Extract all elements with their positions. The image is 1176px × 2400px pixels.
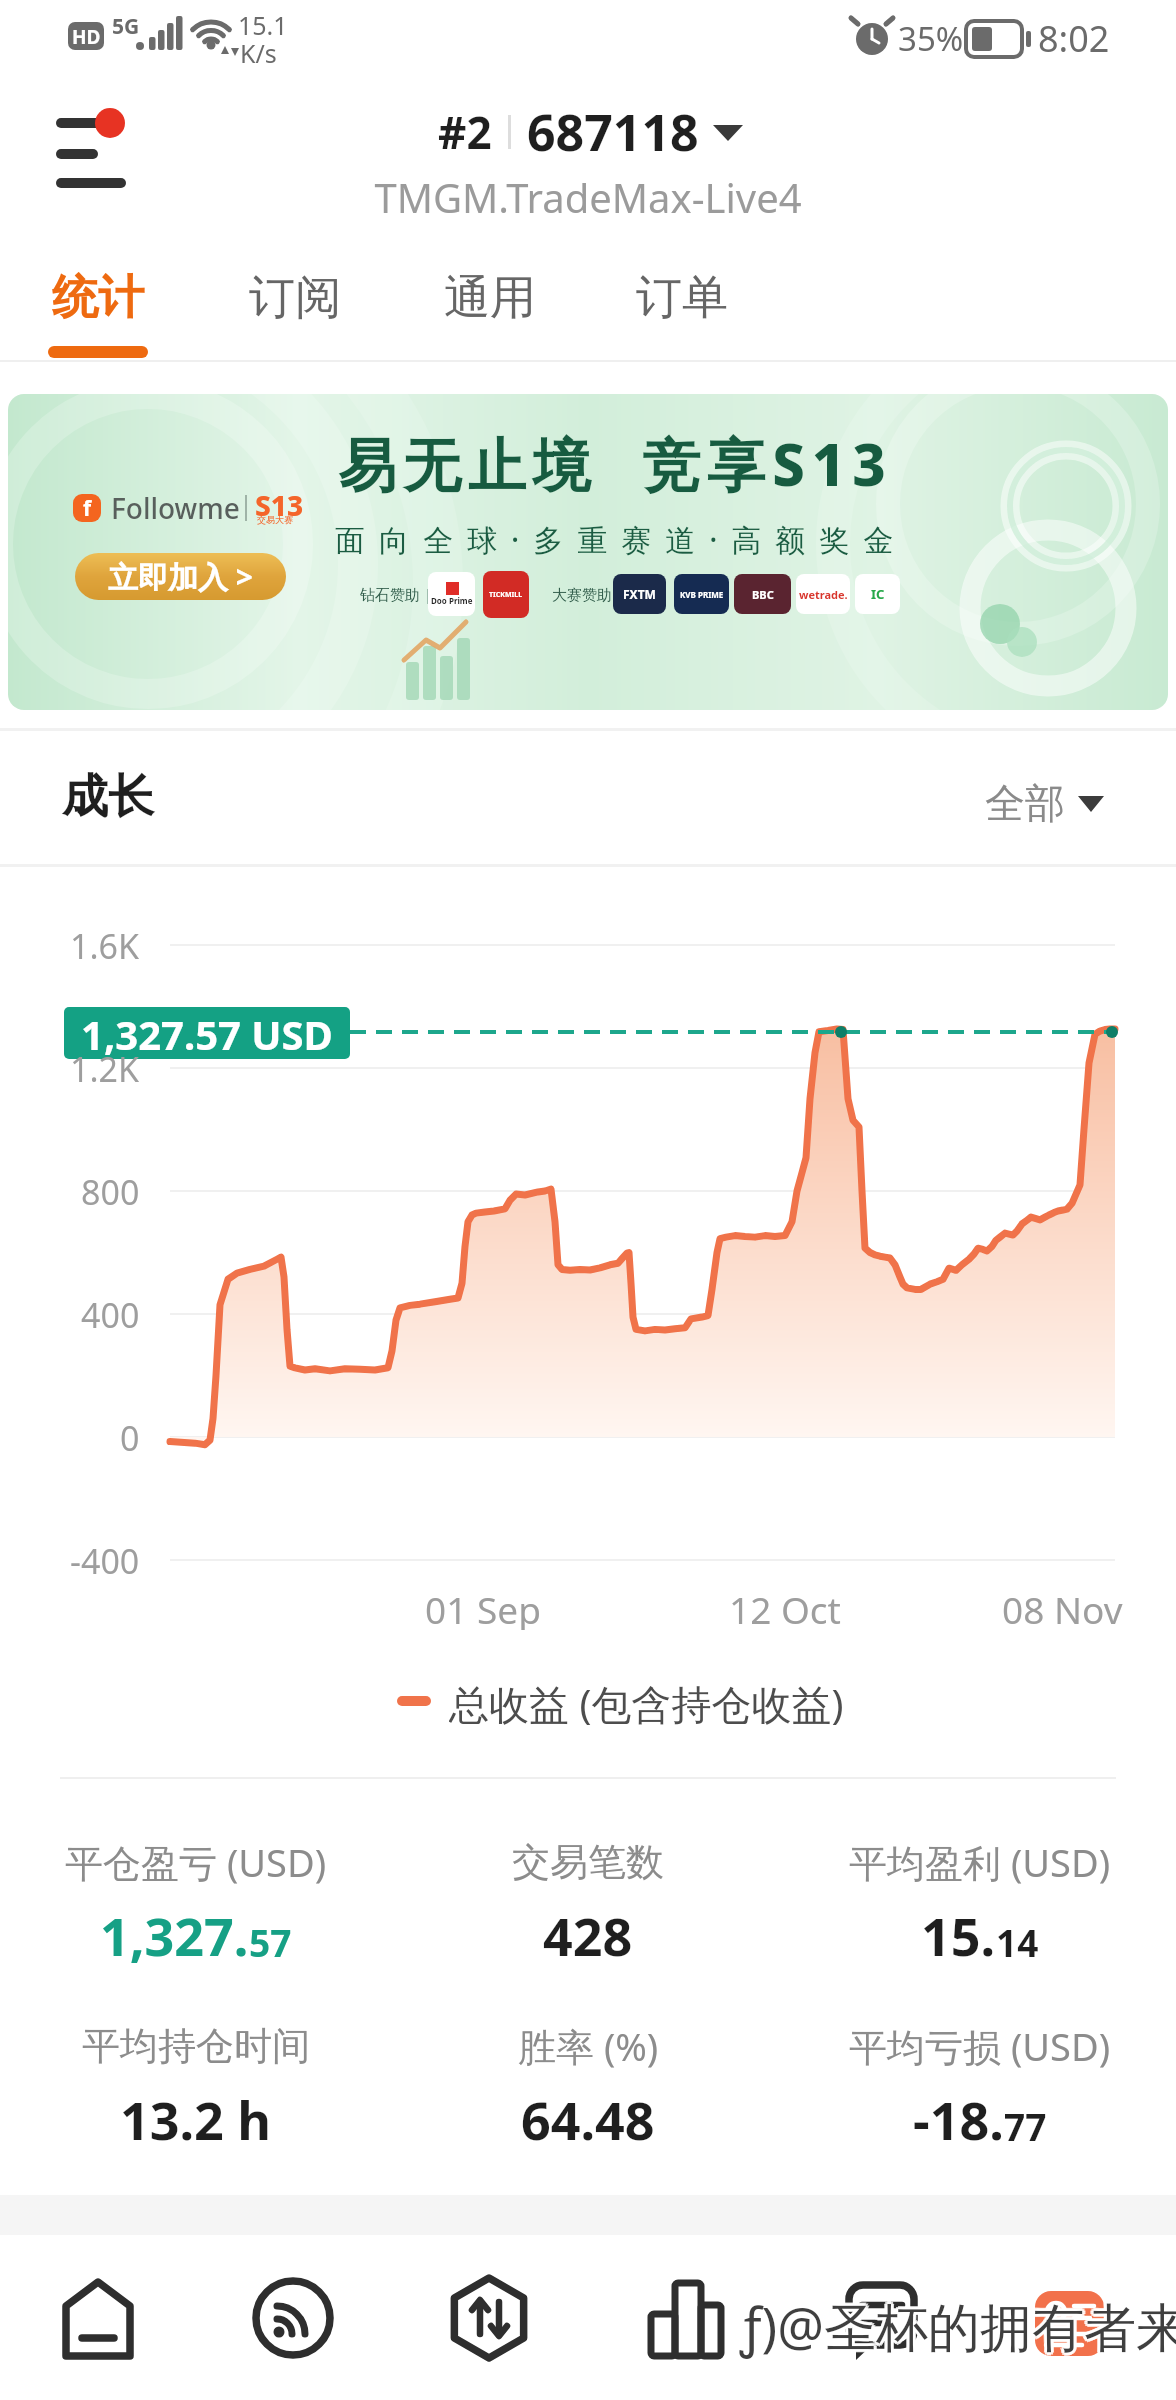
staticText: ƒ)@圣杯的拥有者来自 — [740, 2290, 1176, 2361]
staticText: ƒ)@圣杯的拥有者来自 — [743, 2290, 1176, 2361]
button[interactable]: f — [8, 394, 1168, 710]
staticText: 8:02 — [1038, 14, 1110, 63]
button[interactable]: #2 — [380, 92, 800, 172]
staticText: #2 — [438, 102, 492, 162]
staticText: Doo Prime — [431, 595, 473, 606]
staticText: 35% — [898, 16, 964, 61]
staticText: HD — [72, 24, 101, 50]
staticText: 易无止境 竞享S13 — [338, 424, 893, 503]
staticText: 交易大赛 — [257, 514, 293, 525]
button[interactable] — [605, 2250, 765, 2390]
staticText: 全部 — [985, 778, 1065, 828]
staticText: 01 Sep — [425, 1584, 541, 1630]
staticText: -400 — [70, 1538, 140, 1582]
staticText: ƒ)@圣杯的拥有者来自 — [738, 2288, 1176, 2359]
staticText: 钻石赞助 | — [360, 584, 433, 604]
staticText: 400 — [81, 1292, 140, 1336]
staticText: 800 — [81, 1169, 140, 1213]
staticText: TICKMILL — [489, 590, 523, 600]
staticText: 统计 — [52, 269, 144, 327]
staticText: f — [83, 494, 92, 522]
button[interactable]: 订单 — [612, 250, 752, 345]
staticText: K/s — [240, 36, 277, 70]
staticText: 平均亏损 (USD) — [849, 2020, 1111, 2072]
button[interactable]: 订阅 — [225, 250, 365, 345]
button[interactable]: 全部 — [985, 768, 1125, 838]
staticText: 13.2 h — [120, 2084, 272, 2154]
staticText: 1.2K — [70, 1046, 140, 1090]
staticText: 交易笔数 — [512, 1838, 664, 1886]
button[interactable] — [800, 2250, 960, 2390]
staticText: 1,327.57 USD — [81, 1007, 333, 1059]
button[interactable]: 统计 — [28, 250, 168, 345]
button[interactable]: 通用 — [420, 250, 560, 345]
staticText: TMGM.TradeMax-Live4 — [0, 170, 1176, 224]
staticText: 64.48 — [521, 2084, 655, 2154]
staticText: 平均盈利 (USD) — [849, 1836, 1111, 1888]
staticText: 57 — [249, 1917, 292, 1967]
staticText: 0 — [120, 1415, 140, 1459]
staticText: 12 Oct — [729, 1584, 841, 1630]
staticText: 1,327. — [100, 1900, 249, 1970]
staticText: S13 — [255, 486, 304, 524]
button[interactable] — [213, 2250, 373, 2390]
staticText: 立即加入 > — [108, 556, 253, 597]
button[interactable] — [996, 2250, 1156, 2390]
staticText: 77 — [1004, 2101, 1047, 2151]
staticText: 15.1 — [238, 8, 288, 42]
staticText: 面向全球·多重赛道·高额奖金 — [335, 519, 908, 560]
staticText: ƒ)@圣杯的拥有者来自 — [742, 2288, 1176, 2359]
staticText: ƒ)@圣杯的拥有者来自 — [740, 2293, 1176, 2364]
staticText: 14 — [996, 1917, 1039, 1967]
staticText: 胜率 (%) — [518, 2020, 659, 2072]
staticText: 5G — [112, 12, 140, 41]
staticText: 687118 — [527, 98, 699, 166]
staticText: Followme — [111, 489, 240, 527]
staticText: 大赛赞助 | — [552, 584, 625, 604]
staticText: 平仓盈亏 (USD) — [65, 1836, 327, 1888]
staticText: 平均持仓时间 — [82, 2022, 310, 2070]
button[interactable]: 立即加入 > — [75, 553, 286, 600]
staticText: ƒ)@圣杯的拥有者来自 — [738, 2292, 1176, 2363]
staticText: 订阅 — [249, 269, 341, 327]
staticText: 订单 — [636, 269, 728, 327]
staticText: ƒ)@圣杯的拥有者来自 — [737, 2290, 1176, 2361]
button[interactable] — [40, 95, 150, 200]
staticText: KVB PRIME — [680, 589, 724, 600]
staticText: 成长 — [62, 768, 154, 826]
button[interactable] — [18, 2250, 178, 2390]
staticText: ƒ)@圣杯的拥有者来自 — [740, 2287, 1176, 2358]
staticText: wetrade. — [799, 587, 848, 602]
staticText: IC — [871, 585, 885, 603]
staticText: 428 — [543, 1900, 633, 1970]
staticText: 08 Nov — [1002, 1584, 1123, 1630]
button[interactable] — [409, 2250, 569, 2390]
staticText: 15. — [921, 1900, 996, 1970]
staticText: -18. — [913, 2084, 1004, 2154]
staticText: FXTM — [623, 586, 656, 602]
staticText: 1.6K — [70, 923, 140, 967]
staticText: 通用 — [444, 269, 536, 327]
staticText: BBC — [752, 587, 774, 602]
staticText: ƒ)@圣杯的拥有者来自 — [742, 2292, 1176, 2363]
staticText: 总收益 (包含持仓收益) — [449, 1676, 844, 1726]
